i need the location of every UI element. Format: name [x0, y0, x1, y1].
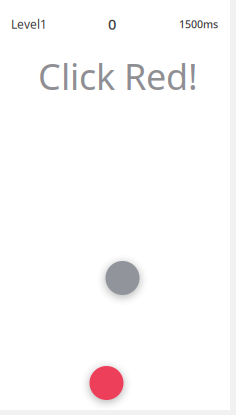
staticText: 1500ms	[179, 17, 218, 31]
staticText: Click Red!	[38, 52, 198, 100]
button[interactable]: Red circle	[89, 366, 123, 400]
staticText: Level1	[11, 16, 47, 32]
button[interactable]: Grey circle	[105, 261, 139, 295]
staticText: 0	[108, 14, 116, 34]
